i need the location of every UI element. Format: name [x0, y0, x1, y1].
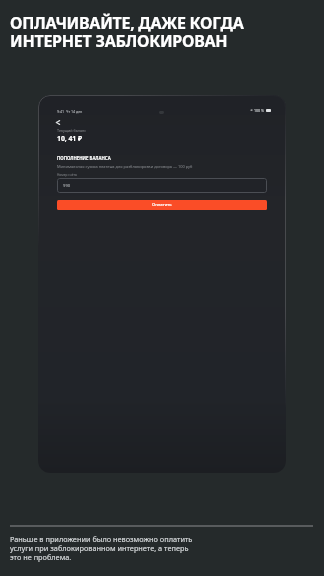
button[interactable]: Назад: [51, 115, 65, 129]
staticText: ОПЛАЧИВАЙТЕ, ДАЖЕ КОГДА ИНТЕРНЕТ ЗАБЛОКИ…: [10, 12, 244, 52]
staticText: 990: [63, 183, 71, 189]
staticText: Минимальная сумма платежа для разблокиро…: [57, 164, 193, 169]
staticText: Номер счёта: [57, 173, 77, 177]
staticText: 9:41 Чт 14 дек: [57, 109, 83, 114]
button[interactable]: Оплатить: [57, 200, 267, 210]
staticText: ПОПОЛНЕНИЕ БАЛАНСА: [57, 155, 111, 161]
staticText: 10, 41 ₽: [57, 134, 83, 143]
button[interactable]: 990: [57, 178, 267, 193]
staticText: Оплатить: [152, 202, 172, 208]
staticText: Раньше в приложении было невозможно опла…: [10, 534, 196, 562]
staticText: 100 %: [254, 108, 265, 113]
staticText: Текущий баланс: [57, 128, 87, 133]
